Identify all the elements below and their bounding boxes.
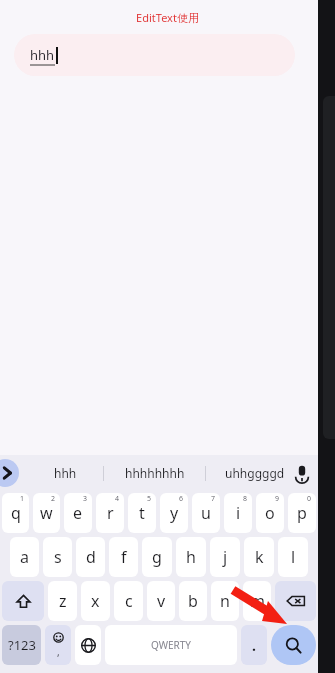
- button[interactable]: uhhggggd: [206, 455, 303, 491]
- button[interactable]: s: [43, 537, 72, 577]
- staticText: ?123: [8, 636, 36, 654]
- staticText: e: [73, 502, 83, 524]
- button[interactable]: q: [2, 493, 29, 533]
- staticText: 8: [243, 494, 248, 504]
- staticText: 0: [307, 494, 312, 504]
- staticText: hhh: [30, 46, 55, 64]
- button[interactable]: k: [244, 537, 274, 577]
- staticText: 6: [179, 494, 184, 504]
- button[interactable]: Shift: [2, 581, 44, 621]
- button[interactable]: Voice input: [289, 460, 315, 486]
- button[interactable]: QWERTY: [105, 625, 237, 665]
- staticText: 7: [211, 494, 216, 504]
- button[interactable]: u: [192, 493, 220, 533]
- staticText: 3: [83, 494, 88, 504]
- button[interactable]: r: [96, 493, 124, 533]
- button[interactable]: v: [147, 581, 175, 621]
- staticText: 9: [275, 494, 280, 504]
- staticText: d: [86, 546, 96, 568]
- staticText: l: [291, 546, 296, 568]
- staticText: 4: [115, 494, 120, 504]
- button[interactable]: a: [10, 537, 39, 577]
- button[interactable]: Search: [271, 625, 316, 665]
- staticText: k: [255, 546, 264, 568]
- button[interactable]: i: [224, 493, 252, 533]
- button[interactable]: hhh: [28, 455, 103, 491]
- staticText: w: [40, 502, 53, 524]
- staticText: hhhhhhhh: [125, 465, 185, 481]
- staticText: m: [250, 590, 265, 612]
- staticText: c: [125, 590, 133, 612]
- staticText: i: [236, 502, 241, 524]
- staticText: b: [188, 590, 198, 612]
- staticText: o: [265, 502, 275, 524]
- staticText: QWERTY: [151, 638, 192, 652]
- staticText: r: [107, 502, 114, 524]
- button[interactable]: x: [81, 581, 110, 621]
- button[interactable]: b: [179, 581, 207, 621]
- button[interactable]: ?123: [2, 625, 41, 665]
- button[interactable]: .: [241, 625, 267, 665]
- button[interactable]: g: [142, 537, 172, 577]
- button[interactable]: d: [76, 537, 105, 577]
- staticText: s: [54, 546, 62, 568]
- staticText: p: [297, 502, 307, 524]
- button[interactable]: o: [256, 493, 284, 533]
- button[interactable]: hhh: [14, 34, 295, 76]
- staticText: ,: [57, 645, 60, 659]
- button[interactable]: p: [288, 493, 316, 533]
- staticText: u: [201, 502, 211, 524]
- staticText: a: [20, 546, 29, 568]
- staticText: 1: [20, 494, 25, 504]
- staticText: EditText使用: [136, 10, 199, 25]
- staticText: uhhggggd: [225, 465, 285, 481]
- staticText: g: [152, 546, 162, 568]
- staticText: hhh: [54, 465, 77, 481]
- button[interactable]: h: [176, 537, 206, 577]
- button[interactable]: n: [211, 581, 239, 621]
- button[interactable]: e: [64, 493, 92, 533]
- staticText: 2: [51, 494, 56, 504]
- button[interactable]: hhhhhhhh: [104, 455, 205, 491]
- button[interactable]: c: [114, 581, 143, 621]
- staticText: j: [223, 546, 228, 568]
- button[interactable]: m: [243, 581, 271, 621]
- staticText: 5: [147, 494, 152, 504]
- button[interactable]: Expand toolbar: [0, 459, 19, 487]
- button[interactable]: l: [278, 537, 308, 577]
- staticText: f: [121, 546, 127, 568]
- staticText: x: [91, 590, 100, 612]
- button[interactable]: Emoji: [45, 625, 71, 665]
- button[interactable]: w: [33, 493, 60, 533]
- staticText: v: [157, 590, 166, 612]
- staticText: n: [220, 590, 230, 612]
- staticText: y: [170, 502, 179, 524]
- button[interactable]: y: [160, 493, 188, 533]
- button[interactable]: Backspace: [275, 581, 316, 621]
- button[interactable]: t: [128, 493, 156, 533]
- staticText: z: [59, 590, 67, 612]
- button[interactable]: Change keyboard language: [75, 625, 101, 665]
- button[interactable]: f: [109, 537, 138, 577]
- button[interactable]: j: [210, 537, 240, 577]
- button[interactable]: z: [48, 581, 77, 621]
- staticText: q: [11, 502, 21, 524]
- staticText: t: [139, 502, 145, 524]
- staticText: h: [186, 546, 196, 568]
- staticText: .: [252, 636, 256, 655]
